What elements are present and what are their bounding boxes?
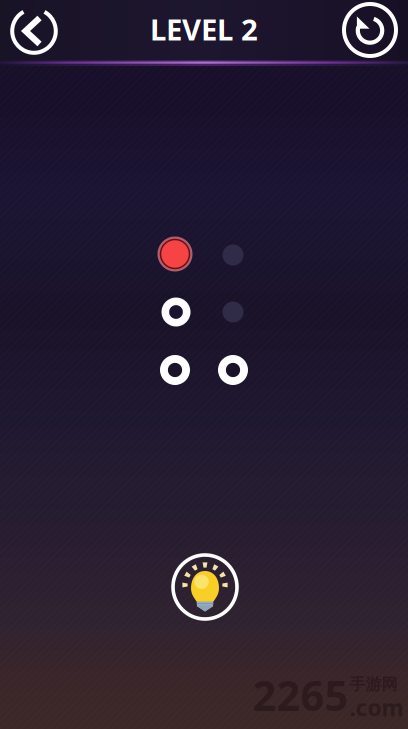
staticText: .com [349,692,403,722]
button[interactable]: Node [154,290,198,334]
button[interactable]: Node [153,348,197,392]
staticText: 手游网 [349,675,397,694]
button[interactable]: Red node [151,230,199,278]
button[interactable]: Inactive node [211,290,255,334]
button[interactable]: Inactive node [211,233,255,277]
staticText: 2265 [252,668,348,722]
button[interactable]: Back [2,0,66,62]
staticText: LEVEL 2 [150,9,258,48]
button[interactable]: Hint [169,551,241,623]
button[interactable]: Restart [338,0,402,61]
button[interactable]: Node [211,348,255,392]
